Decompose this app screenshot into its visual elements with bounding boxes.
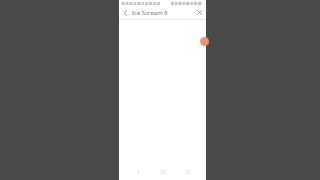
button[interactable]: Back xyxy=(130,164,146,180)
staticText: Ice Scream 6 xyxy=(132,9,193,17)
button[interactable]: Home xyxy=(155,164,171,180)
button[interactable]: Back xyxy=(119,6,132,19)
button[interactable]: Close xyxy=(193,6,206,19)
button[interactable]: Recent apps xyxy=(180,164,196,180)
